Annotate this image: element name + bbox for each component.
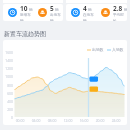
- staticText: 12:00: [61, 118, 75, 123]
- staticText: 辆: [29, 8, 33, 13]
- button[interactable]: 在场车辆: [71, 4, 96, 21]
- other: 出场车辆: [38, 8, 47, 17]
- button[interactable]: 新增车辆: [8, 4, 33, 21]
- staticText: 400: [2, 99, 13, 104]
- staticText: 600: [2, 91, 13, 96]
- staticText: 出场车辆: [50, 13, 63, 21]
- staticText: 出场数: [92, 47, 104, 52]
- staticText: 00:00: [13, 118, 27, 123]
- staticText: 入场数: [112, 47, 124, 52]
- staticText: 新置车流趋势图: [4, 30, 46, 38]
- staticText: 在场车辆: [83, 13, 96, 21]
- other: 在场车辆: [71, 8, 80, 17]
- staticText: 10: [20, 4, 28, 13]
- staticText: 1600: [2, 50, 13, 55]
- staticText: 0: [2, 115, 13, 120]
- other: 平均时长: [101, 8, 110, 17]
- staticText: 新增车辆: [20, 13, 33, 21]
- button[interactable]: 平均时长: [101, 4, 127, 21]
- staticText: 平均时长: [113, 13, 127, 21]
- staticText: 5: [50, 4, 54, 13]
- staticText: 1000: [2, 74, 13, 79]
- staticText: 辆: [124, 8, 127, 13]
- staticText: 04:00: [29, 118, 43, 123]
- staticText: 辆: [88, 8, 92, 13]
- staticText: 200: [2, 107, 13, 112]
- staticText: 08:00: [45, 118, 59, 123]
- other: 新增车辆: [8, 8, 17, 17]
- staticText: 1400: [2, 58, 13, 63]
- staticText: 20:00: [93, 118, 107, 123]
- staticText: 2.8: [113, 4, 123, 13]
- staticText: 4: [83, 4, 87, 13]
- staticText: 1200: [2, 66, 13, 71]
- button[interactable]: 出场车辆: [38, 4, 63, 21]
- staticText: 24:00: [109, 118, 123, 123]
- staticText: 16:00: [77, 118, 91, 123]
- staticText: 辆: [55, 8, 59, 13]
- staticText: 800: [2, 83, 13, 88]
